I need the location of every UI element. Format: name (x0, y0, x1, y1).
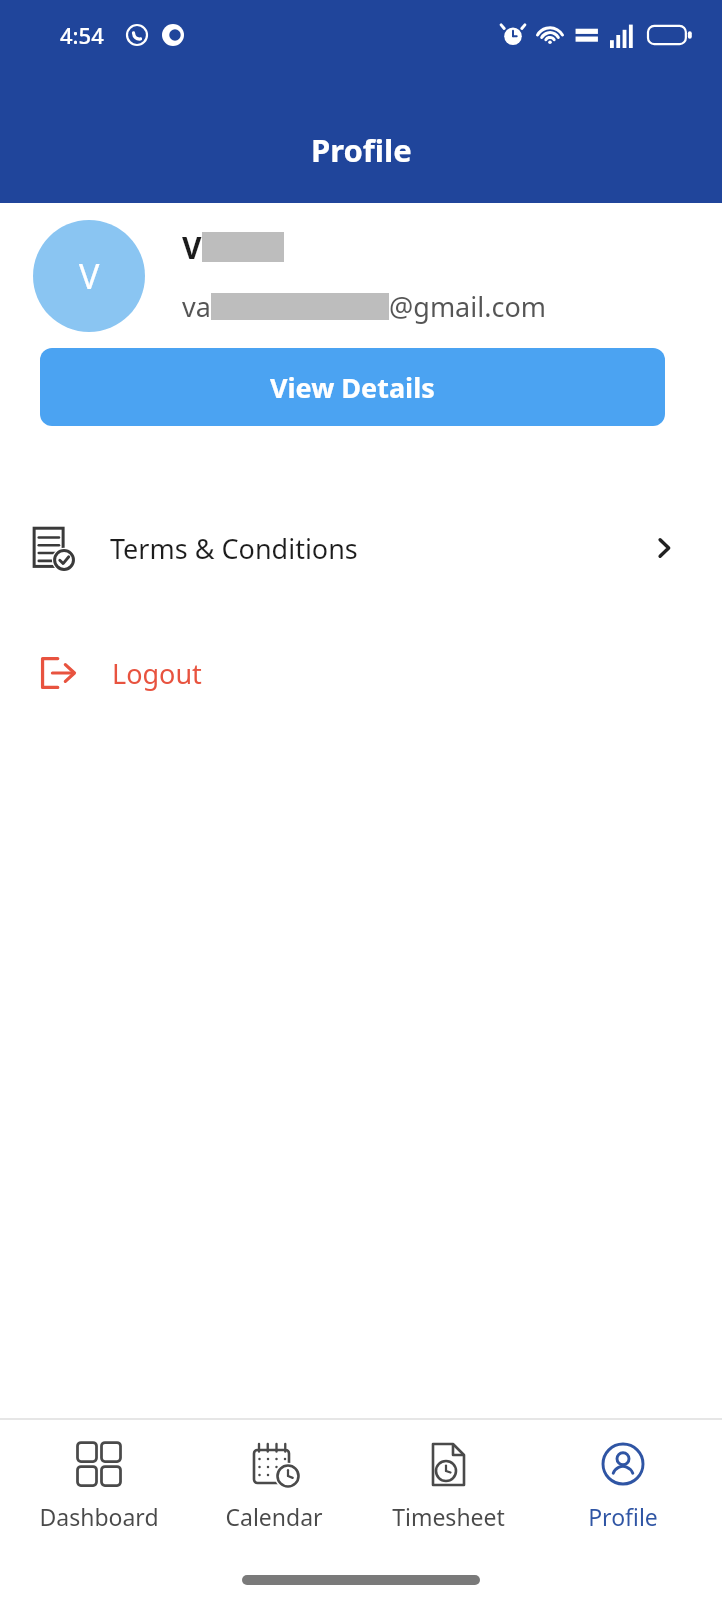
staticText: Calendar (225, 1501, 323, 1532)
staticText: Profile (588, 1501, 658, 1532)
staticText: 4:54 (60, 20, 104, 50)
staticText: View Details (270, 369, 435, 406)
staticText: Terms & Conditions (110, 530, 358, 567)
staticText: @gmail.com (389, 288, 546, 325)
button[interactable]: View Details (40, 348, 665, 426)
staticText: Logout (112, 655, 202, 692)
button[interactable]: Timesheet (373, 1433, 523, 1538)
staticText: Dashboard (39, 1501, 159, 1532)
staticText: Timesheet (392, 1501, 505, 1532)
staticText: V (79, 253, 100, 299)
staticText: V (182, 227, 202, 268)
staticText: va (182, 288, 211, 325)
button[interactable]: Calendar (199, 1433, 349, 1538)
button[interactable]: Terms & Conditions (0, 512, 722, 584)
button[interactable]: Logout (0, 640, 722, 706)
button[interactable]: Dashboard (24, 1433, 174, 1538)
staticText: Profile (311, 129, 412, 171)
button[interactable]: Profile (548, 1433, 698, 1538)
